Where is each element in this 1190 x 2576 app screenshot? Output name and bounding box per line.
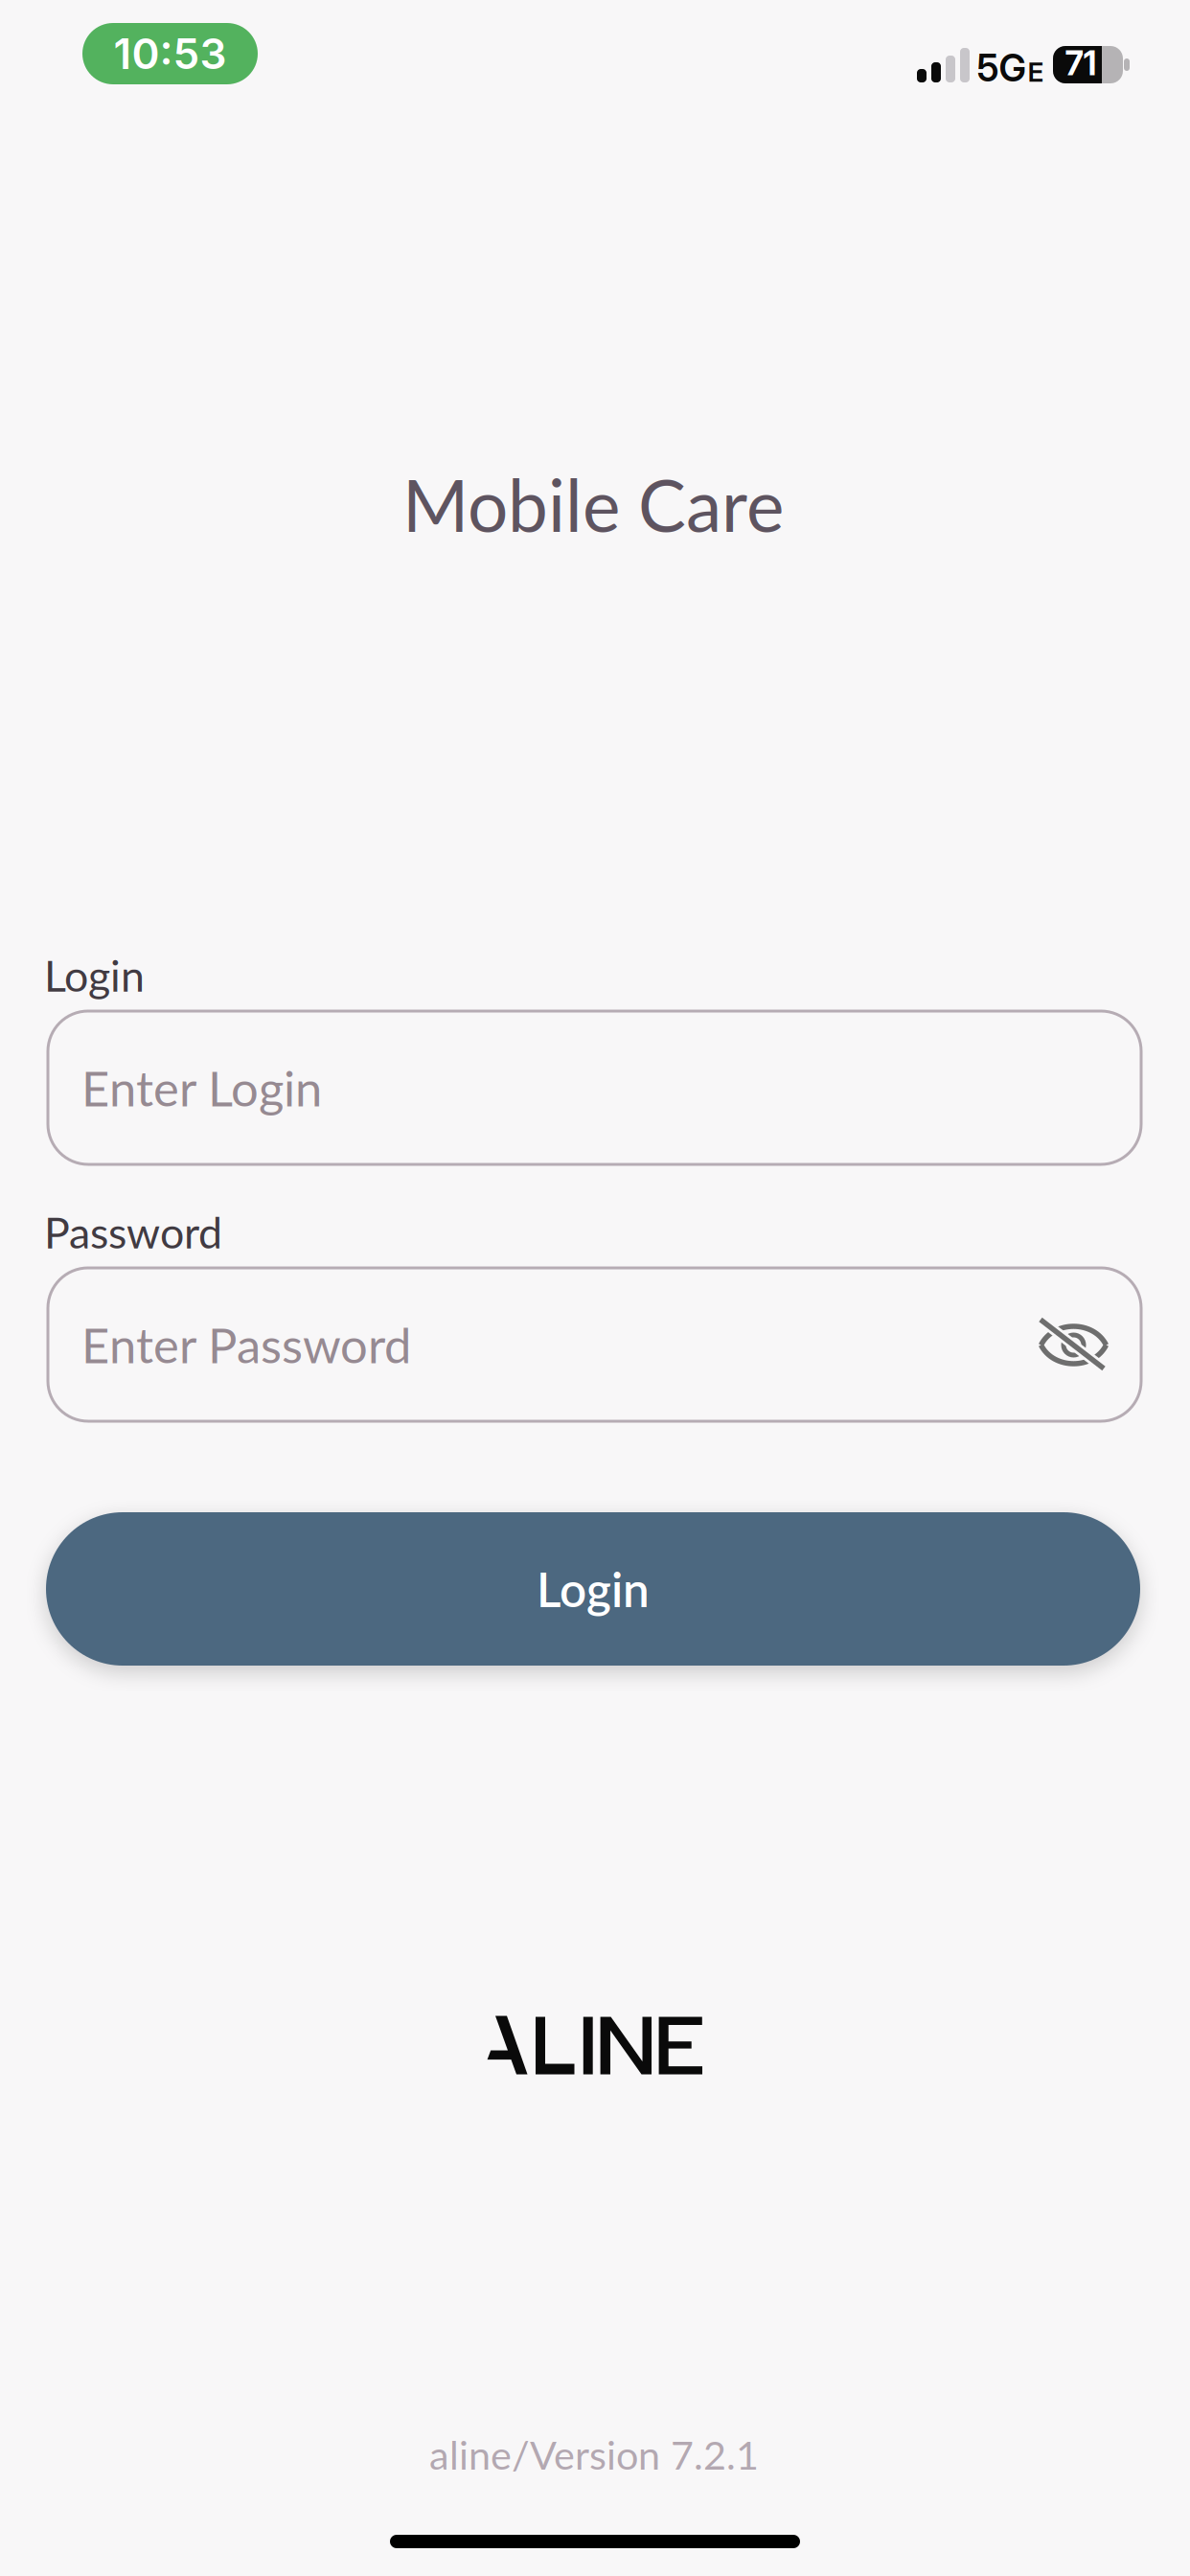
staticText: E [1028, 56, 1044, 88]
button[interactable]: Enter Password [48, 1268, 1141, 1421]
staticText: Login [44, 949, 145, 1001]
staticText: 10:53 [114, 28, 227, 79]
button[interactable]: Login [46, 1512, 1140, 1666]
staticText: Login [537, 1561, 650, 1617]
staticText: Mobile Care [402, 461, 784, 547]
button[interactable]: Show password [1037, 1315, 1110, 1375]
staticText: Enter Login [81, 1059, 322, 1117]
staticText: 71 [1065, 43, 1097, 83]
staticText: Password [44, 1206, 222, 1258]
staticText: 5G [977, 46, 1026, 90]
button[interactable]: Enter Login [48, 1011, 1141, 1164]
staticText: Enter Password [81, 1315, 411, 1374]
staticText: aline/Version 7.2.1 [429, 2431, 759, 2478]
